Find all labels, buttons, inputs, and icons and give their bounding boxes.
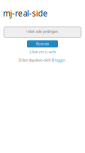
staticText: Blogger (51, 57, 65, 63)
button[interactable]: Beranda (27, 40, 58, 47)
staticText: Tidak ada postingan. (26, 30, 59, 34)
staticText: Beranda (36, 41, 49, 46)
staticText: mj-real-side (3, 8, 48, 19)
staticText: Lihat versi web (29, 49, 55, 54)
button[interactable]: Blogger (51, 57, 65, 63)
button[interactable]: Lihat versi web (0, 49, 85, 54)
staticText: Diberdayakan oleh (18, 57, 51, 63)
